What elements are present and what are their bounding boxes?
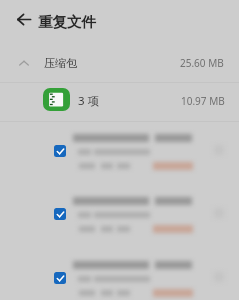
staticText: 10.97 MB [181, 94, 225, 108]
staticText: 重复文件 [38, 13, 96, 31]
button[interactable] [0, 255, 239, 300]
button[interactable]: 3 项 [0, 83, 239, 121]
button[interactable]: Back [11, 7, 36, 32]
staticText: 3 项 [78, 93, 100, 109]
button[interactable] [0, 128, 239, 191]
button[interactable] [0, 191, 239, 254]
staticText: 25.60 MB [180, 56, 224, 70]
button[interactable]: 压缩包 [0, 48, 239, 77]
staticText: 压缩包 [44, 56, 77, 70]
